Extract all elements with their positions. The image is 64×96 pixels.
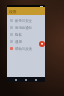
button[interactable]: 账号与安全: [7, 17, 45, 24]
staticText: 隐私: [15, 33, 22, 37]
staticText: 新消息通知: [15, 26, 32, 30]
staticText: 设置: [9, 9, 17, 14]
staticText: 账号与安全: [15, 19, 32, 23]
button[interactable]: 新消息通知: [7, 24, 45, 31]
staticText: 帮助与反馈: [15, 47, 32, 51]
button[interactable]: 隐私: [7, 31, 45, 38]
staticText: 通用: [15, 40, 22, 44]
button[interactable]: Compose: [39, 41, 45, 47]
button[interactable]: 设置: [7, 7, 45, 15]
button[interactable]: 通用: [7, 38, 45, 45]
button[interactable]: 帮助与反馈: [7, 45, 45, 52]
